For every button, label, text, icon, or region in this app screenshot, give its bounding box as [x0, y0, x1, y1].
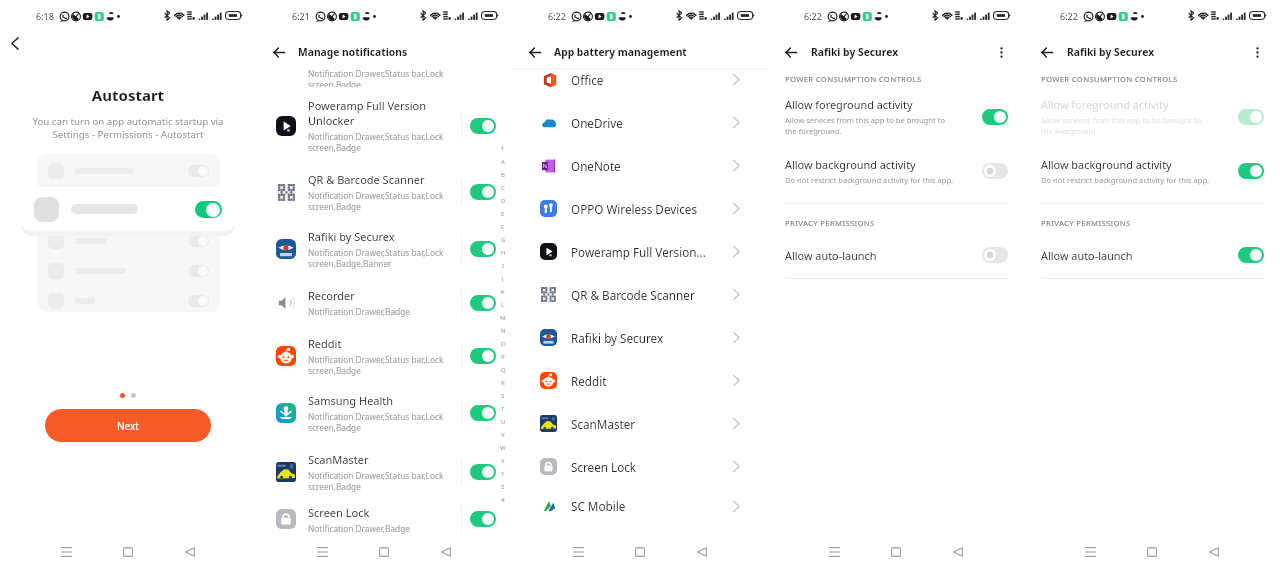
button[interactable]: Toggle [1238, 247, 1264, 263]
staticText: Office [571, 72, 733, 88]
button[interactable]: Reddit [512, 359, 768, 402]
staticText: I [502, 262, 505, 270]
staticText: U [501, 418, 506, 426]
button[interactable]: Allow background activity [1024, 157, 1280, 185]
staticText: Poweramp Full Version Unlocker [308, 98, 427, 128]
staticText: Autostart [0, 85, 256, 105]
staticText: Notification Drawer,Badge [308, 523, 410, 534]
staticText: A [501, 158, 505, 166]
button[interactable]: Recent apps [55, 541, 77, 563]
button[interactable]: Toggle [982, 247, 1008, 263]
staticText: Screen Lock [571, 459, 733, 475]
staticText: Y [501, 470, 505, 478]
staticText: Rafiki by Securex [308, 229, 395, 244]
staticText: Q [501, 366, 506, 374]
button[interactable]: Back [5, 33, 25, 53]
button[interactable]: Allow foreground activity [1024, 97, 1280, 136]
button[interactable]: Home [629, 541, 651, 563]
staticText: S [501, 392, 505, 400]
button[interactable]: Toggle [1238, 109, 1264, 125]
button[interactable]: QR & Barcode Scanner [512, 273, 768, 316]
button[interactable]: Toggle [470, 348, 496, 364]
staticText: Notification Drawer,Badge [308, 306, 410, 317]
button[interactable]: Allow foreground activity [768, 97, 1024, 136]
staticText: Screen Lock [308, 505, 370, 520]
button[interactable] [20, 187, 236, 231]
button[interactable]: Back [179, 541, 201, 563]
button[interactable]: Reddit [256, 326, 512, 385]
button[interactable]: Screen Lock [512, 445, 768, 488]
button[interactable]: Office [512, 58, 768, 101]
button[interactable]: Back [270, 43, 288, 61]
button[interactable]: ScanMaster [256, 440, 512, 503]
staticText: M [500, 314, 506, 322]
button[interactable]: Samsung Health [256, 385, 512, 440]
button[interactable]: QR & Barcode Scanner [256, 164, 512, 219]
button[interactable]: Recent apps [1079, 541, 1101, 563]
button[interactable]: Toggle [470, 295, 496, 311]
staticText: W [500, 444, 506, 452]
button[interactable]: Home [1141, 541, 1163, 563]
button[interactable]: OneNote [512, 144, 768, 187]
button[interactable]: Back [435, 541, 457, 563]
staticText: Notification Drawer,Status bar,Lock scre… [308, 354, 444, 376]
staticText: POWER CONSUMPTION CONTROLS [1041, 74, 1178, 84]
staticText: Rafiki by Securex [811, 45, 899, 59]
button[interactable]: Rafiki by Securex [256, 219, 512, 279]
staticText: Allow foreground activity [785, 97, 913, 112]
button[interactable]: Toggle [470, 118, 496, 134]
staticText: Notification Drawer,Status bar,Lock scre… [308, 68, 444, 87]
button[interactable]: Home [117, 541, 139, 563]
button[interactable]: ScanMaster [512, 402, 768, 445]
button[interactable]: Back [947, 541, 969, 563]
button[interactable]: Back [1038, 43, 1056, 61]
button[interactable]: Toggle [982, 163, 1008, 179]
button[interactable]: OneDrive [512, 101, 768, 144]
button[interactable]: Back [1203, 541, 1225, 563]
button[interactable]: Poweramp Full Version Unlocker [256, 87, 512, 164]
button[interactable]: Toggle [470, 511, 496, 527]
button[interactable]: Rafiki by Securex [512, 316, 768, 359]
button[interactable]: SC Mobile [512, 488, 768, 524]
staticText: X [501, 457, 505, 465]
staticText: Poweramp Full Version... [571, 244, 733, 260]
button[interactable]: OPPO Wireless Devices [512, 187, 768, 230]
button[interactable]: Home [373, 541, 395, 563]
button[interactable]: Poweramp Full Version... [512, 230, 768, 273]
button[interactable]: Toggle [470, 184, 496, 200]
staticText: 6:22 [1060, 10, 1078, 22]
staticText: Allow background activity [785, 157, 916, 172]
button[interactable]: Back [782, 43, 800, 61]
button[interactable]: Next [45, 409, 211, 442]
staticText: Do not restrict background activity for … [1041, 175, 1210, 185]
button[interactable]: Toggle [470, 241, 496, 257]
staticText: OPPO Wireless Devices [571, 201, 733, 217]
button[interactable]: More options [1248, 43, 1266, 61]
button[interactable]: Back [691, 541, 713, 563]
staticText: R [501, 379, 505, 387]
button[interactable]: Toggle [470, 464, 496, 480]
button[interactable]: Toggle [470, 405, 496, 421]
staticText: 6:21 [292, 10, 310, 22]
button[interactable]: Back [526, 43, 544, 61]
button[interactable]: Recorder [256, 279, 512, 326]
button[interactable]: Toggle [1238, 163, 1264, 179]
staticText: Notification Drawer,Status bar,Lock scre… [308, 247, 444, 269]
button[interactable]: Recent apps [823, 541, 845, 563]
staticText: ScanMaster [308, 452, 369, 467]
button[interactable]: More options [992, 43, 1010, 61]
button[interactable]: Allow auto-launch [768, 247, 1024, 263]
staticText: 6:22 [548, 10, 566, 22]
staticText: T [501, 405, 505, 413]
button[interactable]: Recent apps [311, 541, 333, 563]
button[interactable]: Screen Lock [256, 503, 512, 535]
button[interactable]: Toggle [982, 109, 1008, 125]
staticText: J [502, 275, 504, 283]
button[interactable]: Allow auto-launch [1024, 247, 1280, 263]
staticText: Next [117, 419, 139, 433]
button[interactable]: Home [885, 541, 907, 563]
staticText: Rafiki by Securex [1067, 45, 1155, 59]
staticText: Notification Drawer,Status bar,Lock scre… [308, 470, 444, 492]
button[interactable]: Recent apps [567, 541, 589, 563]
button[interactable]: Allow background activity [768, 157, 1024, 185]
